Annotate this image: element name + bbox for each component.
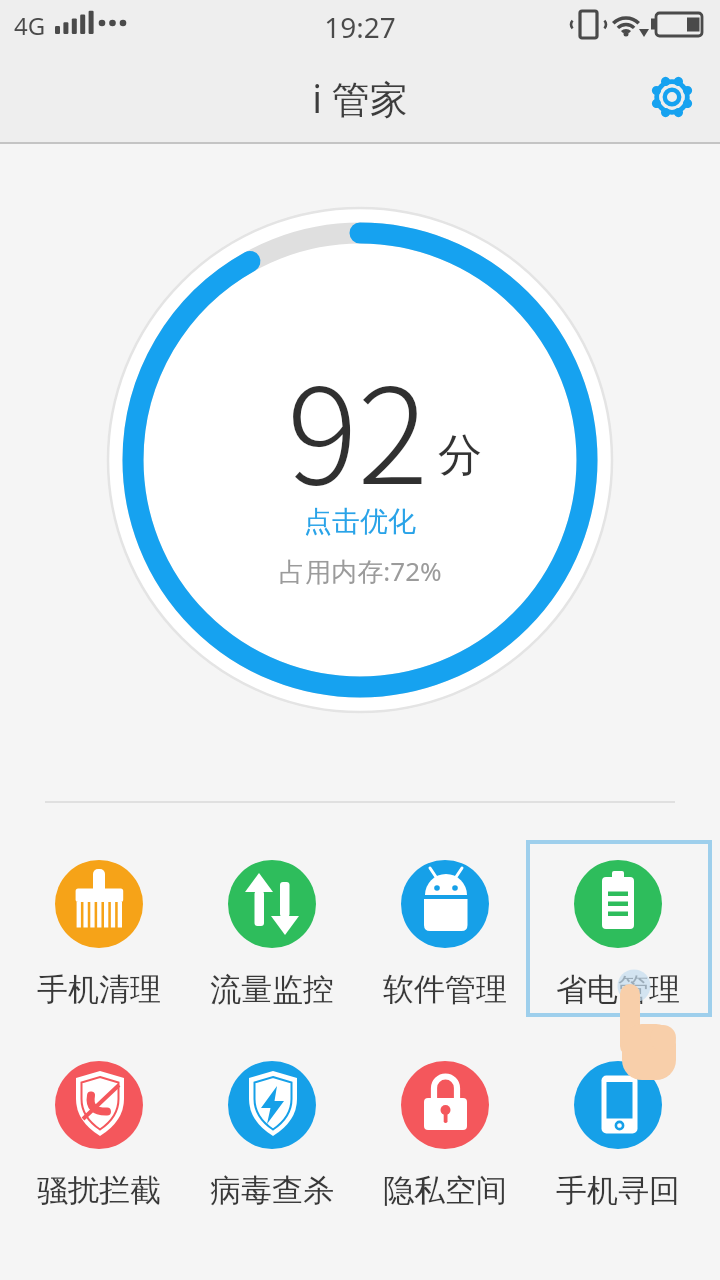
staticText: 手机寻回: [556, 1171, 680, 1210]
button[interactable]: 省电管理: [532, 860, 704, 1009]
staticText: i 管家: [312, 72, 408, 124]
staticText: 软件管理: [383, 970, 507, 1009]
button[interactable]: 软件管理: [359, 860, 531, 1009]
button[interactable]: 骚扰拦截: [13, 1061, 185, 1210]
staticText: 92: [287, 331, 429, 522]
staticText: 病毒查杀: [210, 1171, 334, 1210]
staticText: 点击优化: [304, 504, 416, 539]
button[interactable]: 隐私空间: [359, 1061, 531, 1210]
button[interactable]: 手机清理: [13, 860, 185, 1009]
staticText: 占用内存:72%: [279, 553, 442, 589]
button[interactable]: 手机寻回: [532, 1061, 704, 1210]
staticText: 流量监控: [210, 970, 334, 1009]
button[interactable]: 病毒查杀: [186, 1061, 358, 1210]
staticText: 分: [438, 428, 482, 483]
button[interactable]: 流量监控: [186, 860, 358, 1009]
staticText: 省电管理: [556, 970, 680, 1009]
staticText: 隐私空间: [383, 1171, 507, 1210]
button[interactable]: 点击优化: [0, 504, 720, 539]
button[interactable]: [650, 75, 694, 119]
staticText: 4G: [14, 9, 46, 42]
staticText: 19:27: [324, 8, 396, 46]
staticText: 骚扰拦截: [37, 1171, 161, 1210]
staticText: 手机清理: [37, 970, 161, 1009]
